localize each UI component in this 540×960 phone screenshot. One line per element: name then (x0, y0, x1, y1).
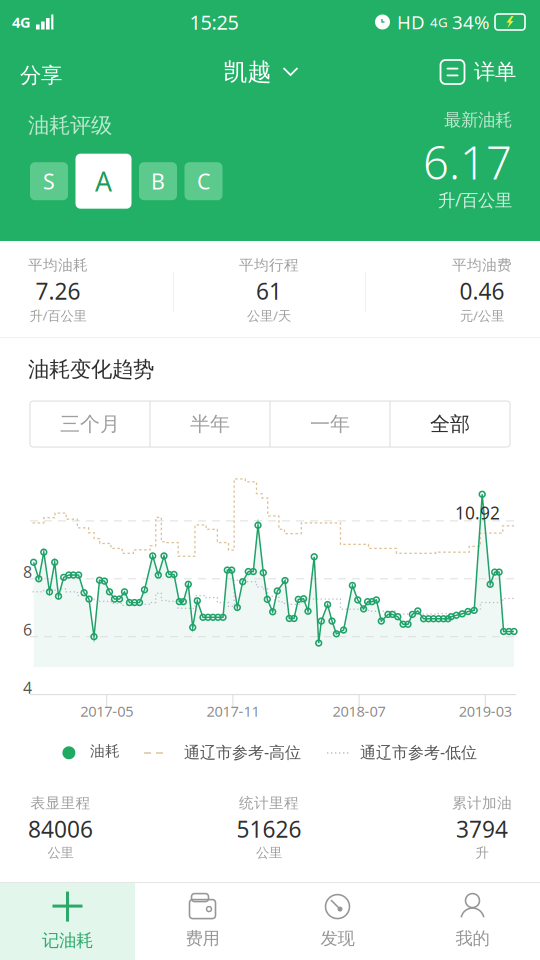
staticText: 详单 (474, 59, 516, 85)
staticText: 最新油耗 (444, 109, 512, 131)
staticText: 平均行程 (239, 256, 299, 274)
staticText: 半年 (190, 411, 230, 437)
staticText: 通辽市参考-高位 (184, 741, 301, 763)
button[interactable]: 凯越 (223, 44, 298, 100)
staticText: 全部 (430, 411, 470, 437)
button[interactable]: 半年 (150, 401, 269, 447)
button[interactable]: 全部 (390, 401, 509, 447)
staticText: 统计里程 (239, 794, 299, 812)
button[interactable]: 三个月 (30, 401, 149, 447)
button[interactable]: 一年 (270, 401, 389, 447)
staticText: 公里 (47, 844, 73, 861)
staticText: 4 (23, 677, 32, 698)
staticText: 10.92 (455, 501, 500, 525)
staticText: A (95, 163, 112, 199)
staticText: 表显里程 (30, 794, 90, 812)
staticText: 升/百公里 (29, 306, 86, 325)
staticText: 8 (23, 561, 32, 583)
staticText: 元/公里 (460, 306, 504, 325)
button[interactable]: 记油耗 (0, 883, 135, 960)
staticText: 平均油费 (452, 256, 512, 274)
staticText: 油耗评级 (28, 112, 112, 139)
staticText: 发现 (320, 928, 354, 949)
staticText: 记油耗 (42, 930, 93, 951)
staticText: 3794 (456, 813, 508, 844)
staticText: 6 (23, 619, 32, 640)
staticText: 凯越 (223, 57, 271, 87)
staticText: 2019-03 (459, 701, 512, 721)
staticText: 公里/天 (247, 306, 291, 325)
button[interactable]: 详单 (440, 44, 540, 100)
staticText: HD (397, 9, 425, 35)
button[interactable]: 分享 (0, 40, 82, 103)
button[interactable]: B (139, 162, 177, 200)
button[interactable]: 我的 (405, 883, 540, 960)
staticText: 4G (430, 13, 448, 31)
button[interactable]: 费用 (135, 883, 270, 960)
staticText: B (151, 167, 165, 196)
staticText: S (43, 167, 55, 196)
button[interactable]: A (75, 154, 131, 209)
staticText: 84006 (28, 813, 93, 844)
staticText: 分享 (20, 62, 62, 89)
staticText: 我的 (455, 928, 489, 949)
staticText: 平均油耗 (28, 256, 88, 274)
staticText: 升/百公里 (438, 188, 512, 212)
staticText: 6.17 (423, 131, 512, 193)
staticText: 2017-05 (80, 701, 133, 721)
staticText: 0.46 (459, 275, 504, 306)
button[interactable]: C (184, 162, 222, 200)
staticText: 15:25 (189, 8, 238, 36)
staticText: 三个月 (60, 411, 120, 437)
staticText: 费用 (185, 928, 219, 949)
staticText: 公里 (256, 844, 282, 861)
staticText: 升 (475, 844, 488, 861)
staticText: 4G (12, 12, 31, 32)
staticText: C (197, 167, 210, 196)
staticText: 61 (256, 275, 282, 306)
staticText: 51626 (236, 813, 301, 844)
staticText: 油耗变化趋势 (28, 356, 154, 383)
staticText: 7.26 (35, 275, 80, 306)
button[interactable]: S (30, 162, 68, 200)
staticText: 通辽市参考-低位 (360, 741, 477, 763)
staticText: 34% (452, 9, 490, 35)
staticText: 油耗 (90, 742, 120, 760)
staticText: 2018-07 (333, 701, 386, 721)
staticText: 2017-11 (206, 701, 259, 721)
staticText: 累计加油 (452, 794, 512, 812)
button[interactable]: 发现 (270, 883, 405, 960)
staticText: 一年 (310, 411, 350, 437)
